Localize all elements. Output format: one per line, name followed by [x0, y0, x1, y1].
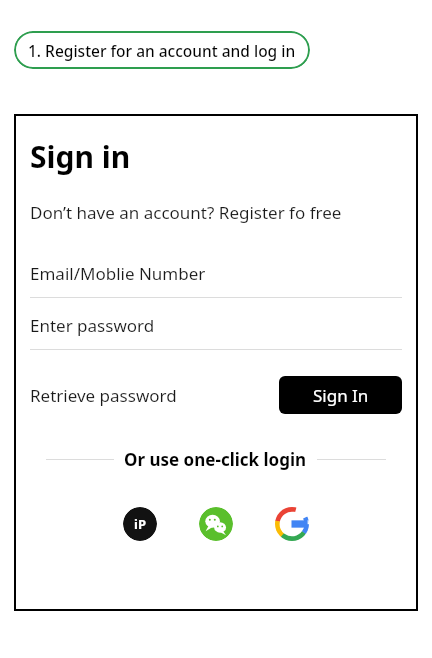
button[interactable]: Sign In: [279, 376, 402, 414]
staticText: Email/Moblie Number: [30, 262, 206, 285]
button[interactable]: Sign in with Google: [275, 507, 309, 541]
button[interactable]: Email/Moblie Number: [30, 262, 402, 298]
staticText: Enter password: [30, 314, 155, 337]
button[interactable]: Sign in with WeChat: [199, 507, 233, 541]
staticText: Retrieve password: [30, 384, 177, 407]
staticText: Or use one-click login: [124, 448, 307, 471]
staticText: iP: [134, 515, 146, 533]
staticText: 1. Register for an account and log in: [28, 40, 296, 61]
button[interactable]: Enter password: [30, 314, 402, 350]
button[interactable]: 1. Register for an account and log in: [14, 31, 310, 69]
staticText: Sign In: [313, 384, 369, 407]
staticText: Sign in: [30, 136, 131, 177]
button[interactable]: Sign in with iP: [123, 507, 157, 541]
button[interactable]: Retrieve password: [30, 384, 177, 407]
staticText: Don’t have an account? Register fo free: [30, 201, 342, 224]
